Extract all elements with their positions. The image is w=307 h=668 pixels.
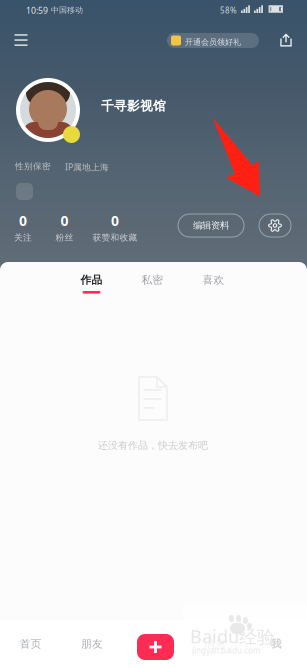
button[interactable]: Settings [259, 214, 291, 237]
staticText: 0 [111, 211, 119, 230]
button[interactable]: Create [133, 627, 178, 667]
button[interactable]: 0 [92, 213, 138, 241]
button[interactable]: 喜欢 [190, 267, 236, 295]
button[interactable]: 0 [54, 213, 74, 241]
staticText: 还没有作品，快去发布吧 [98, 439, 208, 452]
staticText: 关注 [14, 232, 32, 243]
button[interactable]: Menu [7, 27, 35, 53]
button[interactable]: 消息 [193, 620, 237, 668]
staticText: 私密 [141, 273, 163, 287]
staticText: IP属地上海 [65, 161, 109, 173]
staticText: 粉丝 [55, 232, 73, 243]
button[interactable]: 作品 [68, 267, 114, 295]
staticText: 喜欢 [202, 273, 224, 287]
staticText: Baidu经验 [190, 624, 275, 649]
staticText: 首页 [20, 637, 42, 651]
button[interactable]: 首页 [9, 620, 53, 668]
staticText: 编辑资料 [193, 220, 229, 231]
staticText: 朋友 [81, 637, 103, 651]
staticText: 中国移动 [51, 5, 83, 15]
staticText: 作品 [80, 273, 102, 287]
staticText: 0 [60, 211, 68, 230]
button[interactable]: 开通会员领好礼 [167, 33, 259, 48]
button[interactable]: 0 [13, 213, 33, 241]
staticText: 获赞和收藏 [92, 232, 137, 243]
staticText: jingyan.baidu.com [192, 645, 260, 656]
staticText: 0 [19, 211, 27, 230]
button[interactable]: 私密 [129, 267, 175, 295]
staticText: 58% [220, 5, 237, 16]
button[interactable]: 编辑资料 [178, 214, 244, 237]
staticText: 我 [271, 637, 282, 651]
button[interactable]: 朋友 [70, 620, 114, 668]
staticText: 消息 [204, 637, 226, 651]
staticText: 开通会员领好礼 [185, 37, 241, 47]
button[interactable]: Share [275, 27, 297, 53]
staticText: 千寻影视馆 [101, 98, 166, 114]
button[interactable]: 我 [254, 620, 298, 668]
staticText: 性别保密 [15, 161, 51, 172]
staticText: 10:59 [26, 4, 48, 16]
